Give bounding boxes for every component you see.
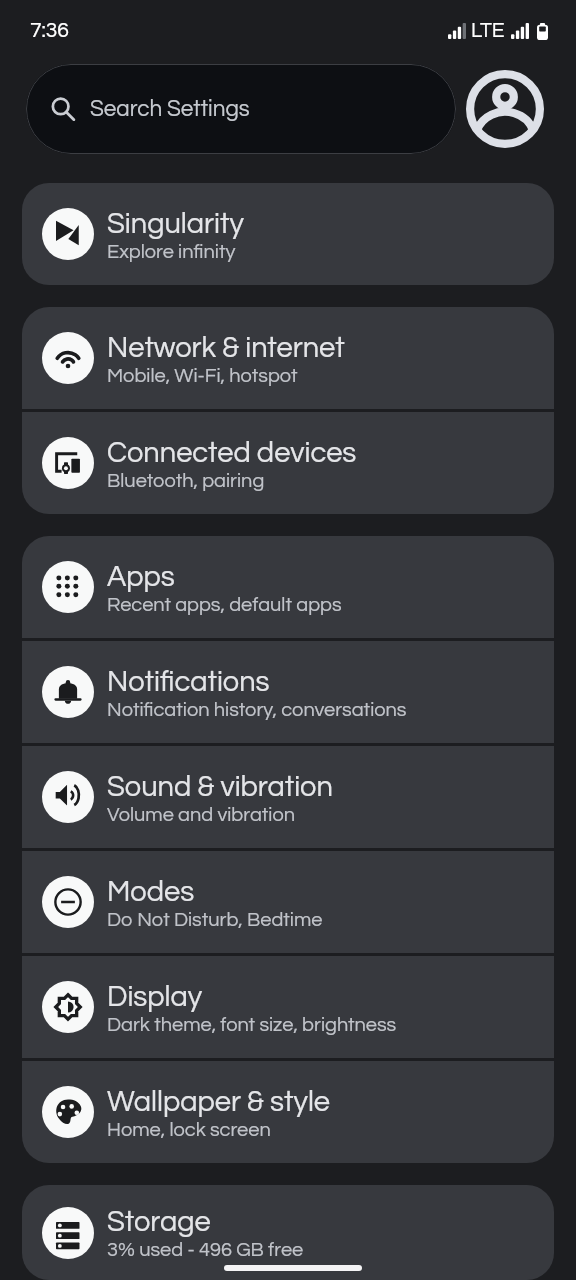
button[interactable]: Notifications xyxy=(22,641,554,743)
staticText: Home, lock screen xyxy=(107,1120,271,1141)
button[interactable]: Modes xyxy=(22,851,554,953)
staticText: Mobile, Wi-Fi, hotspot xyxy=(107,366,298,387)
staticText: Network & internet xyxy=(107,333,345,363)
button[interactable]: Network & internet xyxy=(22,307,554,409)
button[interactable]: Connected devices xyxy=(22,412,554,514)
button[interactable]: Wallpaper & style xyxy=(22,1061,554,1163)
staticText: LTE xyxy=(471,20,505,42)
staticText: Connected devices xyxy=(107,438,357,468)
staticText: Dark theme, font size, brightness xyxy=(107,1015,397,1036)
staticText: Do Not Disturb, Bedtime xyxy=(107,910,323,931)
staticText: Wallpaper & style xyxy=(107,1087,331,1117)
staticText: Volume and vibration xyxy=(107,805,296,826)
staticText: 3% used - 496 GB free xyxy=(107,1240,304,1261)
staticText: Recent apps, default apps xyxy=(107,595,342,616)
button[interactable]: Account xyxy=(464,68,546,150)
staticText: Modes xyxy=(107,877,195,907)
button[interactable]: Apps xyxy=(22,536,554,638)
staticText: Bluetooth, pairing xyxy=(107,471,265,492)
staticText: Notification history, conversations xyxy=(107,700,407,721)
staticText: Storage xyxy=(107,1207,211,1237)
button[interactable]: Singularity xyxy=(22,183,554,285)
staticText: Sound & vibration xyxy=(107,772,333,802)
staticText: Search Settings xyxy=(90,98,250,121)
staticText: Notifications xyxy=(107,667,270,697)
staticText: Singularity xyxy=(107,209,244,239)
staticText: 7:36 xyxy=(30,20,69,42)
button[interactable]: Sound & vibration xyxy=(22,746,554,848)
staticText: Apps xyxy=(107,562,175,592)
button[interactable]: Search Settings xyxy=(26,64,456,154)
staticText: Explore infinity xyxy=(107,242,236,263)
button[interactable]: Storage xyxy=(22,1185,554,1280)
staticText: Display xyxy=(107,982,203,1012)
button[interactable]: Display xyxy=(22,956,554,1058)
